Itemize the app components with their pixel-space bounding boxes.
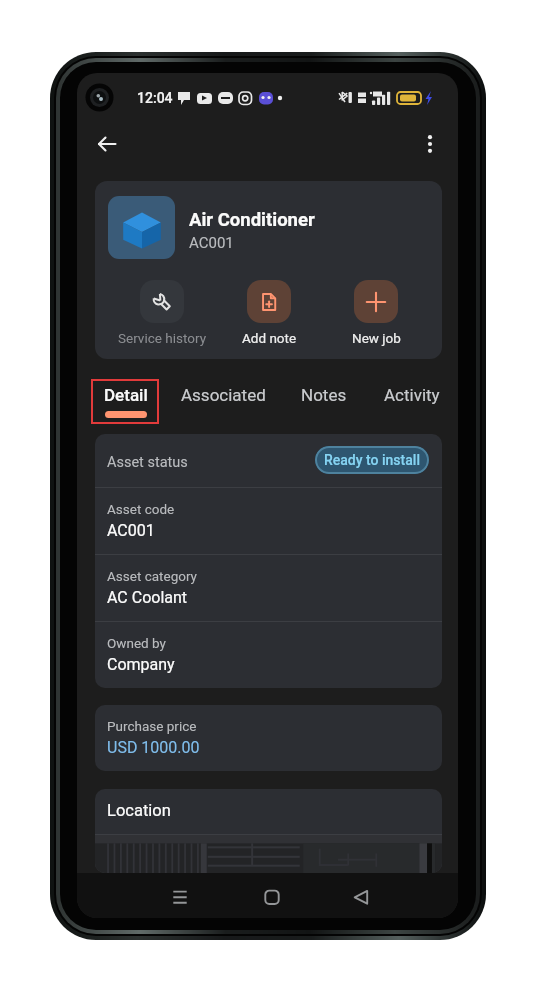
staticText: Purchase price	[107, 718, 197, 734]
staticText: New job	[352, 330, 401, 346]
button[interactable]: Service history	[95, 280, 235, 346]
button[interactable]: Add note	[196, 280, 342, 346]
staticText: Activity	[384, 385, 440, 405]
button[interactable]: Recents	[160, 874, 200, 914]
staticText: Associated	[181, 385, 266, 405]
staticText: Add note	[242, 330, 297, 346]
staticText: Company	[107, 655, 175, 674]
button[interactable]: Activity	[371, 379, 427, 424]
staticText: Asset status	[107, 454, 188, 471]
button[interactable]: Notes	[288, 379, 334, 424]
staticText: Asset code	[107, 501, 175, 517]
button[interactable]: Detail	[91, 379, 159, 424]
staticText: 12:04	[137, 90, 173, 106]
button[interactable]: Ready to install	[315, 446, 429, 474]
staticText: Owned by	[107, 635, 166, 651]
staticText: USD 1000.00	[107, 738, 200, 757]
staticText: AC001	[107, 521, 155, 540]
staticText: AC001	[189, 234, 234, 252]
button[interactable]: Back	[87, 124, 127, 164]
staticText: Service history	[118, 330, 207, 346]
staticText: Detail	[104, 385, 148, 405]
staticText: Asset category	[107, 568, 198, 584]
button[interactable]: Associated	[168, 379, 253, 424]
button[interactable]: New job	[303, 280, 442, 346]
staticText: AC Coolant	[107, 588, 188, 607]
button[interactable]: Back	[341, 874, 381, 914]
button[interactable]: More options	[410, 124, 450, 164]
button[interactable]: Home	[251, 874, 291, 914]
staticText: Location	[107, 801, 171, 820]
staticText: Notes	[301, 385, 347, 405]
staticText: Ready to install	[324, 452, 420, 468]
staticText: Air Conditioner	[189, 209, 315, 231]
